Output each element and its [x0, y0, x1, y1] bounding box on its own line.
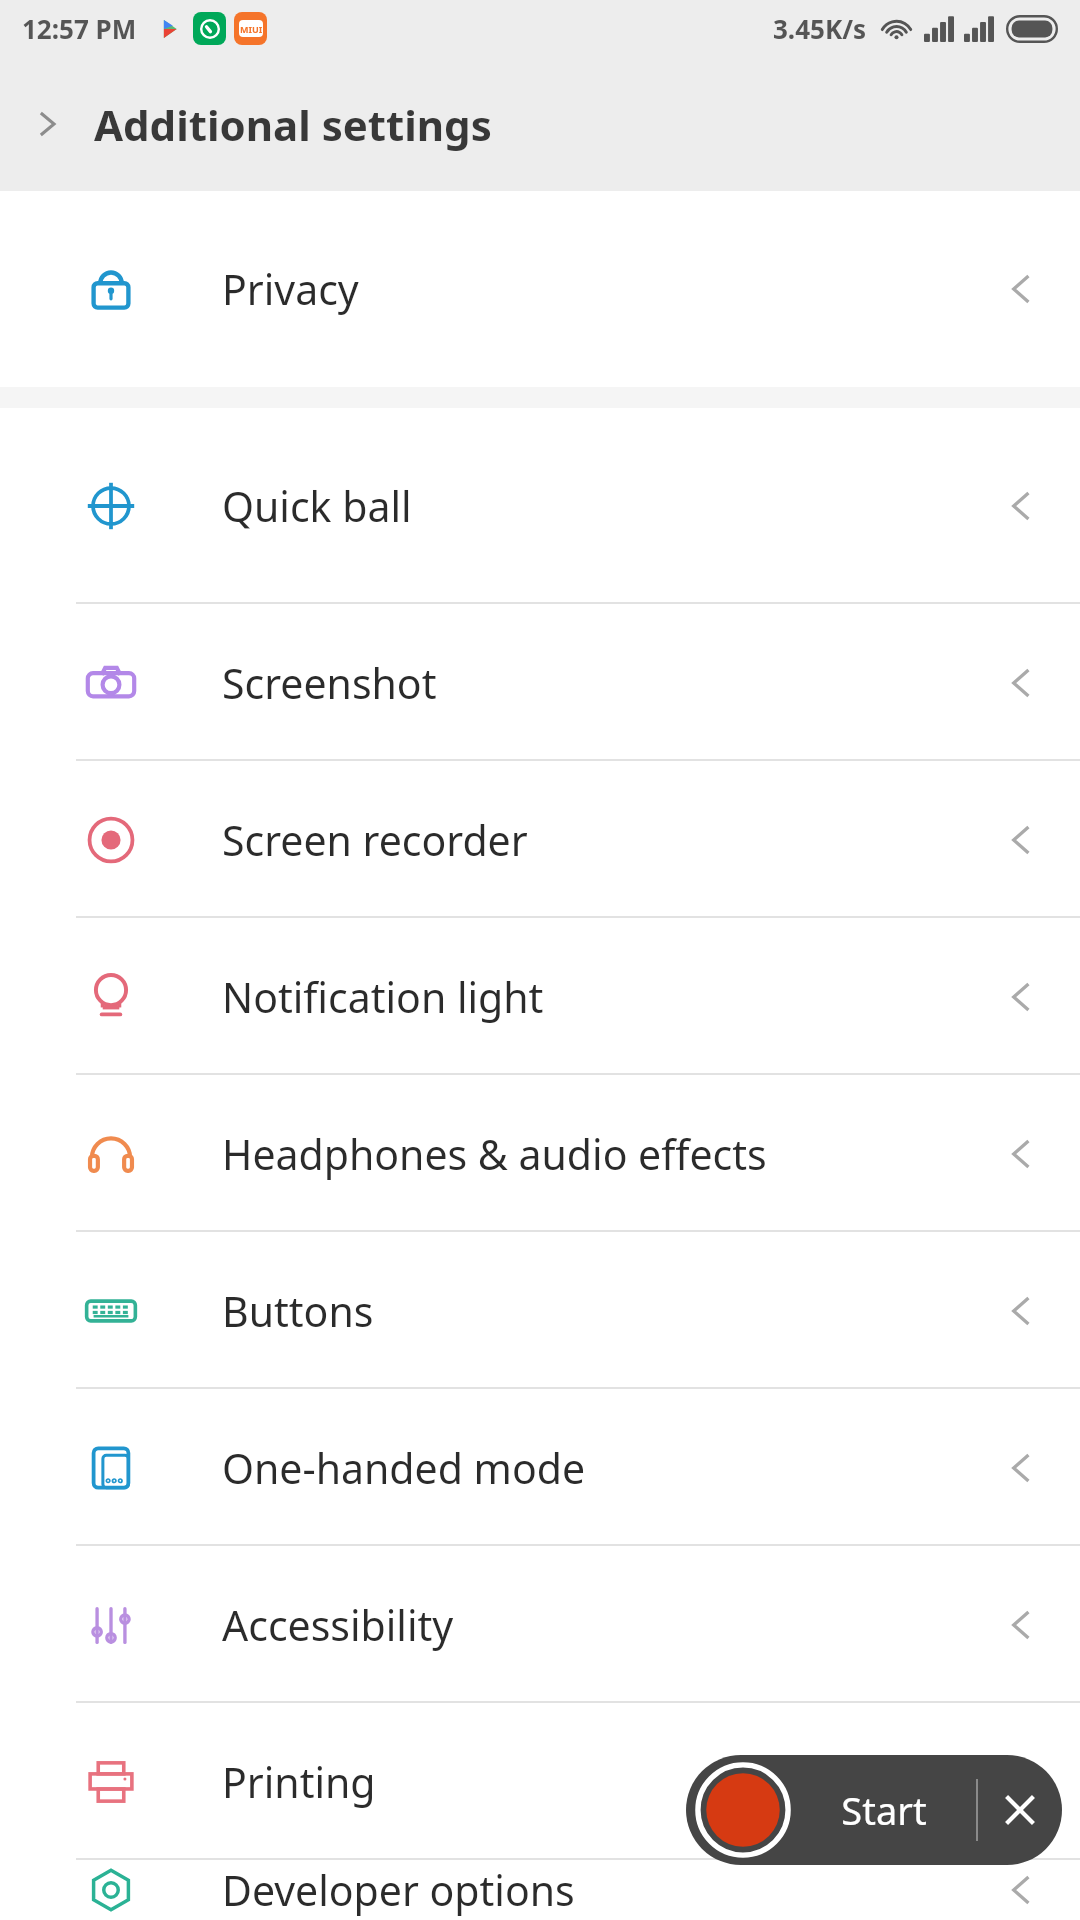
button[interactable]: Screen recorder — [0, 761, 1080, 918]
button[interactable]: Quick ball — [0, 408, 1080, 604]
staticText: Screen recorder — [222, 812, 528, 868]
staticText: Quick ball — [222, 478, 412, 534]
staticText: Start — [841, 1784, 927, 1836]
button[interactable]: Headphones & audio effects — [0, 1075, 1080, 1232]
staticText: 12:57 PM — [22, 11, 137, 46]
button[interactable]: Back — [0, 77, 94, 171]
staticText: Developer options — [222, 1862, 575, 1918]
button[interactable]: Privacy — [0, 191, 1080, 387]
button[interactable]: Printing — [0, 1703, 1080, 1860]
button[interactable]: Developer options — [0, 1860, 1080, 1920]
staticText: Buttons — [222, 1283, 374, 1339]
staticText: 3.45K/s — [773, 11, 867, 46]
staticText: Additional settings — [94, 96, 492, 153]
staticText: Headphones & audio effects — [222, 1126, 767, 1182]
staticText: MIUI — [240, 23, 263, 35]
button[interactable]: One-handed mode — [0, 1389, 1080, 1546]
button[interactable]: Notification light — [0, 918, 1080, 1075]
staticText: Printing — [222, 1754, 376, 1810]
button[interactable]: Close — [978, 1755, 1062, 1865]
button[interactable]: Record — [694, 1761, 792, 1859]
button[interactable]: Accessibility — [0, 1546, 1080, 1703]
staticText: One-handed mode — [222, 1440, 586, 1496]
button[interactable]: Buttons — [0, 1232, 1080, 1389]
button[interactable]: Screenshot — [0, 604, 1080, 761]
staticText: Screenshot — [222, 655, 437, 711]
staticText: Accessibility — [222, 1597, 454, 1653]
staticText: Privacy — [222, 261, 359, 317]
staticText: Notification light — [222, 969, 544, 1025]
